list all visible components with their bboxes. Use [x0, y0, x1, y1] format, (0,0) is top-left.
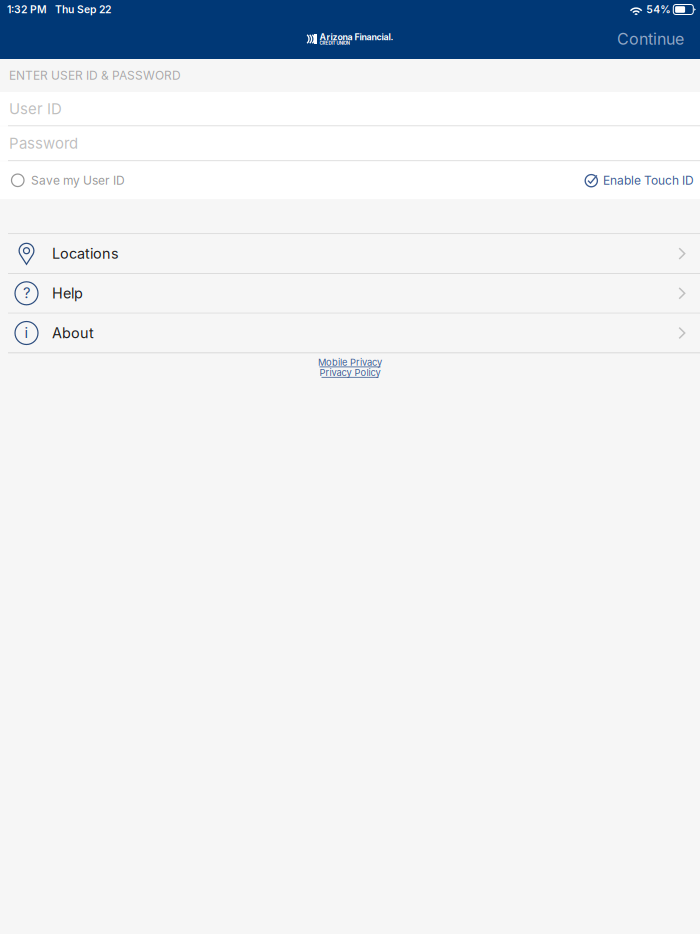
staticText: Help	[52, 285, 83, 302]
button[interactable]: i	[0, 314, 700, 352]
button[interactable]: Mobile Privacy	[318, 358, 382, 367]
staticText: Thu Sep 22	[55, 3, 111, 16]
staticText: Continue	[617, 29, 684, 49]
staticText: ENTER USER ID & PASSWORD	[9, 68, 181, 83]
button[interactable]: Locations	[0, 234, 700, 273]
staticText: User ID	[9, 100, 62, 118]
staticText: Save my User ID	[31, 173, 125, 187]
staticText: 1:32 PM	[7, 3, 47, 16]
staticText: Password	[9, 134, 78, 152]
staticText: Arizona Financial.	[319, 32, 393, 42]
staticText: Enable Touch ID	[603, 173, 694, 187]
button[interactable]: Privacy Policy	[319, 369, 380, 378]
staticText: About	[52, 324, 94, 342]
staticText: Privacy Policy	[319, 367, 380, 378]
staticText: Mobile Privacy	[318, 357, 382, 368]
staticText: Locations	[52, 245, 119, 262]
button[interactable]: Save my User ID	[0, 163, 125, 197]
staticText: ?	[23, 284, 30, 302]
button[interactable]: Continue	[603, 22, 700, 56]
button[interactable]: ?	[0, 274, 700, 313]
staticText: i	[24, 324, 28, 341]
staticText: CREDIT UNION	[319, 40, 349, 46]
button[interactable]: Enable Touch ID	[584, 163, 700, 197]
staticText: 54%	[646, 3, 670, 16]
